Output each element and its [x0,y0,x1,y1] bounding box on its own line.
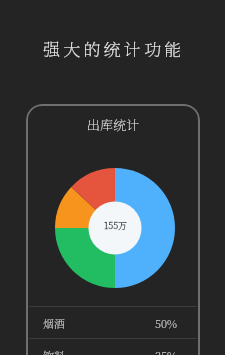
staticText: 155万 [104,219,128,232]
staticText: 25% [155,347,177,355]
button[interactable]: 饮料 [26,339,200,355]
staticText: 强大的统计功能 [43,36,185,60]
other: 出库统计饼图 [55,168,175,288]
staticText: 烟酒 [43,315,65,331]
button[interactable]: 烟酒 [26,307,200,338]
staticText: 饮料 [43,347,65,355]
staticText: 出库统计 [26,115,200,134]
staticText: 50% [155,315,177,331]
